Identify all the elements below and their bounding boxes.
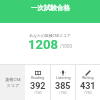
staticText: 431 [80, 81, 96, 92]
staticText: 一次試験合格 [31, 4, 70, 12]
staticText: あなたの英検CSEスコア [0, 33, 100, 38]
staticText: Reading [31, 75, 45, 80]
staticText: 1208 [28, 37, 58, 52]
staticText: /750 [84, 91, 92, 95]
staticText: /750 [34, 91, 42, 95]
staticText: Writing [82, 75, 94, 80]
button[interactable]: Listening [51, 65, 75, 100]
staticText: 英検CSE スコア [5, 77, 21, 88]
button[interactable]: Writing [76, 65, 100, 100]
staticText: 392 [30, 81, 46, 92]
button[interactable]: 英検CSE スコア [0, 65, 25, 100]
staticText: 385 [55, 81, 71, 92]
other: Reading [35, 70, 41, 76]
staticText: Listening [56, 75, 71, 80]
other: Writing [85, 70, 91, 76]
button[interactable]: Reading [25, 65, 50, 100]
other: Listening [60, 70, 66, 76]
staticText: /750 [59, 91, 67, 95]
staticText: /1950 [60, 43, 72, 49]
